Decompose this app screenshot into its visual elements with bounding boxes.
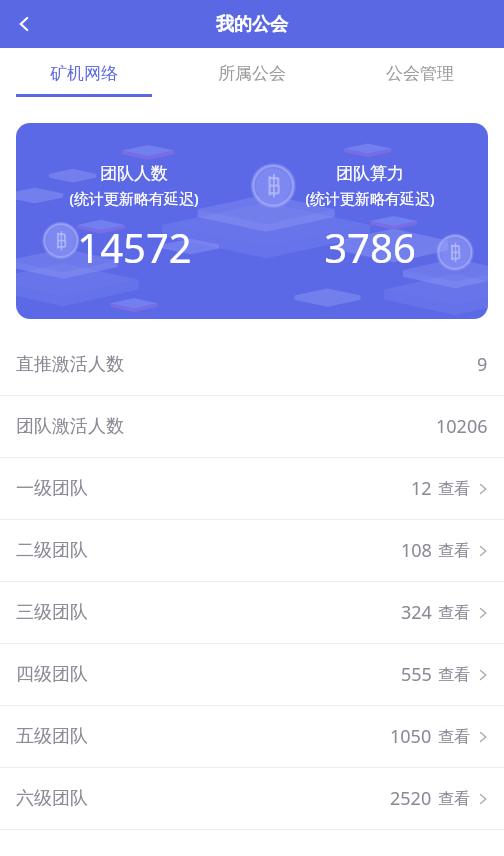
button[interactable]: 团队人数 xyxy=(16,123,488,319)
staticText: 公会管理 xyxy=(386,63,454,84)
staticText: 四级团队 xyxy=(16,663,88,686)
staticText: 我的公会 xyxy=(216,13,288,36)
staticText: 9 xyxy=(477,352,488,377)
staticText: (统计更新略有延迟) xyxy=(305,188,435,208)
staticText: 查看 xyxy=(438,727,470,747)
staticText: 矿机网络 xyxy=(50,63,118,84)
button[interactable]: 一级团队 xyxy=(0,458,504,519)
staticText: 查看 xyxy=(438,603,470,623)
button[interactable]: 团队激活人数 xyxy=(0,396,504,457)
button[interactable]: 五级团队 xyxy=(0,706,504,767)
staticText: 三级团队 xyxy=(16,601,88,624)
button[interactable]: 六级团队 xyxy=(0,768,504,829)
staticText: (统计更新略有延迟) xyxy=(69,188,199,208)
staticText: 五级团队 xyxy=(16,725,88,748)
staticText: 10206 xyxy=(436,414,488,439)
staticText: 12 xyxy=(411,476,432,501)
staticText: 查看 xyxy=(438,665,470,685)
button[interactable]: 公会管理 xyxy=(336,48,504,112)
staticText: 1050 xyxy=(390,724,432,749)
staticText: 团队激活人数 xyxy=(16,415,124,438)
staticText: 二级团队 xyxy=(16,539,88,562)
button[interactable]: 三级团队 xyxy=(0,582,504,643)
staticText: 3786 xyxy=(324,220,416,274)
button[interactable]: 直推激活人数 xyxy=(0,334,504,395)
staticText: 2520 xyxy=(390,786,432,811)
staticText: 六级团队 xyxy=(16,787,88,810)
staticText: 所属公会 xyxy=(218,63,286,84)
button[interactable]: Back xyxy=(0,0,48,48)
staticText: 查看 xyxy=(438,541,470,561)
staticText: 一级团队 xyxy=(16,477,88,500)
staticText: 555 xyxy=(401,662,432,687)
button[interactable]: 四级团队 xyxy=(0,644,504,705)
staticText: 直推激活人数 xyxy=(16,353,124,376)
button[interactable]: 二级团队 xyxy=(0,520,504,581)
staticText: 108 xyxy=(401,538,432,563)
staticText: 查看 xyxy=(438,789,470,809)
staticText: 团队算力 xyxy=(336,163,404,184)
staticText: 团队人数 xyxy=(100,163,168,184)
staticText: 324 xyxy=(401,600,432,625)
staticText: 14572 xyxy=(77,220,192,274)
button[interactable]: 矿机网络 xyxy=(0,48,168,112)
staticText: 查看 xyxy=(438,479,470,499)
button[interactable]: 所属公会 xyxy=(168,48,336,112)
